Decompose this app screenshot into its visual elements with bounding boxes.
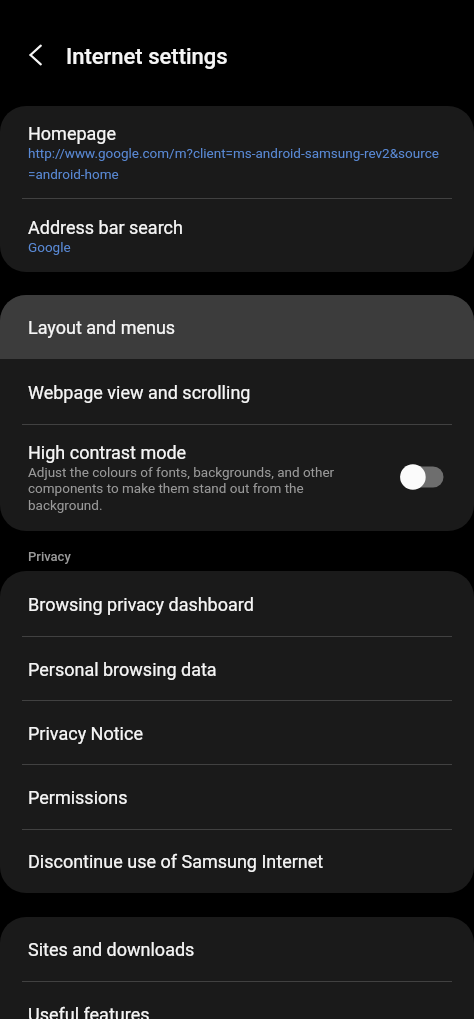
button[interactable]: Webpage view and scrolling <box>0 359 474 425</box>
button[interactable]: Navigate up <box>15 34 57 76</box>
staticText: Privacy Notice <box>28 723 143 744</box>
staticText: High contrast mode <box>28 442 187 463</box>
staticText: Personal browsing data <box>28 659 217 680</box>
staticText: Layout and menus <box>28 317 176 338</box>
staticText: http://www.google.com/m?client=ms-androi… <box>28 145 439 182</box>
button[interactable]: High contrast mode toggle <box>396 456 448 500</box>
button[interactable]: Layout and menus <box>0 295 474 359</box>
button[interactable]: Browsing privacy dashboard <box>0 571 474 637</box>
button[interactable]: Privacy Notice <box>0 701 474 765</box>
staticText: Google <box>28 239 71 255</box>
staticText: Discontinue use of Samsung Internet <box>28 851 324 872</box>
button[interactable]: Useful features <box>0 982 474 1019</box>
button[interactable]: Personal browsing data <box>0 637 474 701</box>
staticText: Sites and downloads <box>28 939 195 960</box>
button[interactable]: Discontinue use of Samsung Internet <box>0 830 474 893</box>
button[interactable]: Permissions <box>0 765 474 830</box>
button[interactable]: Sites and downloads <box>0 917 474 982</box>
staticText: Homepage <box>28 123 116 144</box>
staticText: Webpage view and scrolling <box>28 382 251 403</box>
staticText: Privacy <box>28 549 71 564</box>
staticText: Adjust the colours of fonts, backgrounds… <box>28 464 360 514</box>
staticText: Internet settings <box>66 44 228 70</box>
staticText: Permissions <box>28 787 128 808</box>
staticText: Browsing privacy dashboard <box>28 594 254 615</box>
staticText: Useful features <box>28 1004 150 1019</box>
staticText: Address bar search <box>28 217 183 238</box>
